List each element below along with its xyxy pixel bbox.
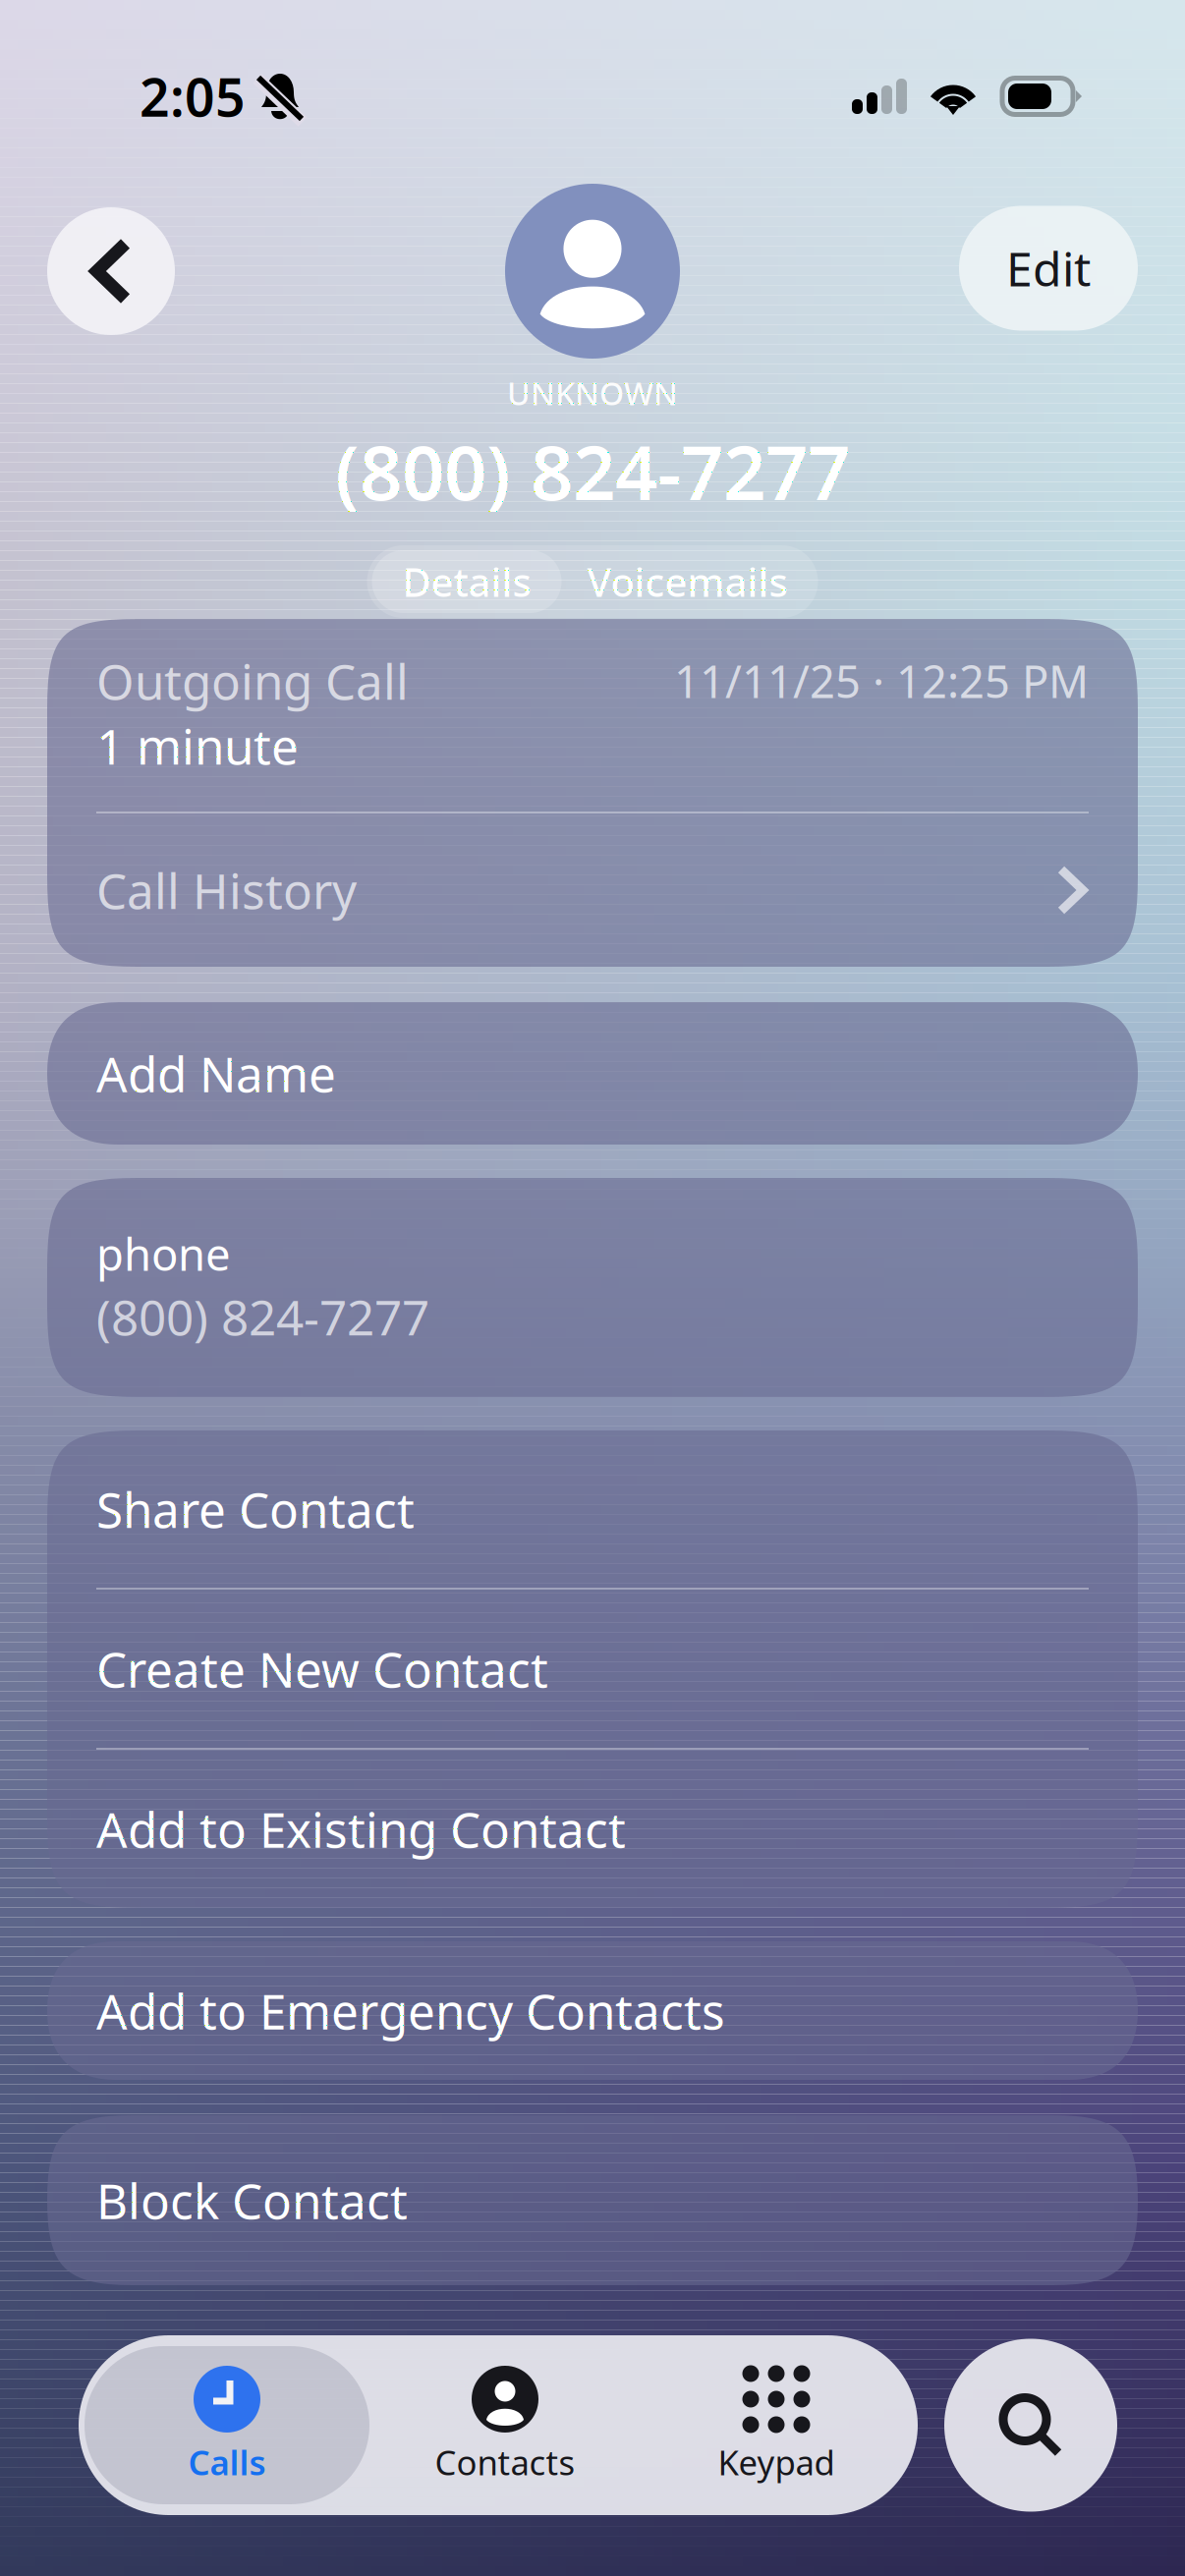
staticText: UNKNOWN: [507, 372, 678, 414]
staticText: 1 minute: [96, 713, 299, 778]
button[interactable]: Calls: [85, 2346, 369, 2504]
button[interactable]: Create New Contact: [47, 1590, 1138, 1748]
staticText: Details: [402, 555, 531, 608]
staticText: Voicemails: [587, 555, 788, 608]
staticText: 11/11/25 · 12:25 PM: [674, 651, 1089, 710]
button[interactable]: Contacts: [369, 2346, 641, 2504]
button[interactable]: Search: [944, 2335, 1117, 2515]
button[interactable]: phone: [47, 1178, 1138, 1397]
staticText: (800) 824-7277: [96, 1284, 429, 1349]
staticText: Call History: [96, 858, 357, 922]
button[interactable]: Outgoing Call: [47, 619, 1138, 812]
staticText: Contacts: [435, 2439, 575, 2485]
button[interactable]: Share Contact: [47, 1430, 1138, 1588]
button[interactable]: Add to Existing Contact: [47, 1750, 1138, 1908]
staticText: Outgoing Call: [96, 649, 409, 713]
staticText: Add Name: [96, 1041, 336, 1105]
staticText: Block Contact: [96, 2168, 408, 2232]
staticText: Add to Existing Contact: [96, 1797, 626, 1861]
staticText: Create New Contact: [96, 1636, 548, 1701]
staticText: Edit: [1006, 237, 1091, 299]
button[interactable]: Edit: [959, 206, 1138, 331]
staticText: 2:05: [140, 62, 246, 131]
button[interactable]: Add to Emergency Contacts: [47, 1941, 1138, 2080]
button[interactable]: Block Contact: [47, 2115, 1138, 2285]
staticText: phone: [96, 1224, 231, 1283]
staticText: Share Contact: [96, 1477, 415, 1541]
staticText: Keypad: [718, 2439, 835, 2485]
button[interactable]: Add Name: [47, 1002, 1138, 1145]
button[interactable]: Details: [372, 550, 562, 613]
staticText: Calls: [188, 2439, 266, 2485]
staticText: (800) 824-7277: [335, 421, 850, 521]
button[interactable]: Back: [47, 206, 175, 336]
button[interactable]: Call History: [47, 813, 1138, 967]
staticText: Add to Emergency Contacts: [96, 1978, 725, 2043]
button[interactable]: Voicemails: [562, 550, 813, 613]
button[interactable]: Keypad: [641, 2346, 912, 2504]
